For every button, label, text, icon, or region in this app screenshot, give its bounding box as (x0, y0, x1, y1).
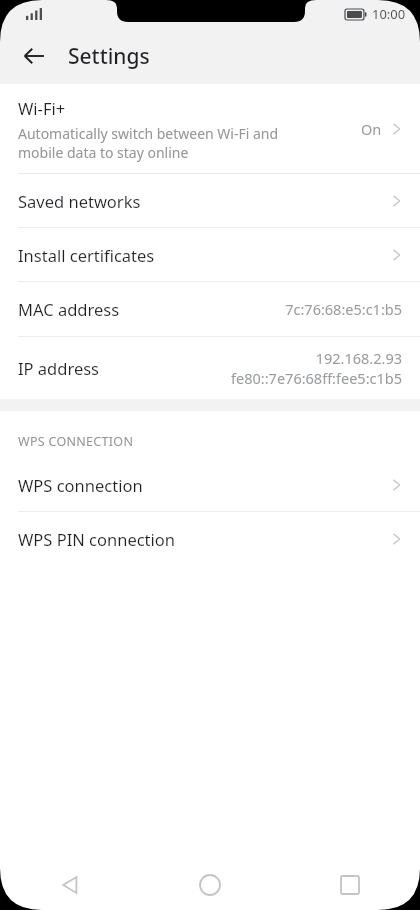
staticText: 192.168.2.93 (315, 348, 402, 368)
button[interactable]: Back (14, 36, 54, 76)
staticText: 7c:76:68:e5:c1:b5 (285, 299, 402, 319)
button[interactable]: IP address (0, 337, 420, 399)
staticText: WPS PIN connection (18, 528, 390, 550)
staticText: 10:00 (372, 5, 406, 23)
button[interactable]: Saved networks (0, 174, 420, 227)
staticText: Install certificates (18, 244, 390, 266)
staticText: IP address (18, 357, 231, 379)
staticText: Settings (68, 42, 150, 71)
button[interactable]: WPS PIN connection (0, 512, 420, 565)
staticText: fe80::7e76:68ff:fee5:c1b5 (231, 368, 402, 388)
button[interactable]: MAC address (0, 282, 420, 336)
staticText: WPS connection (18, 474, 390, 496)
button[interactable]: Install certificates (0, 228, 420, 281)
staticText: Automatically switch between Wi-Fi and m… (18, 124, 279, 162)
staticText: Saved networks (18, 190, 390, 212)
staticText: MAC address (18, 298, 285, 320)
button[interactable]: Home (140, 860, 280, 910)
staticText: On (361, 119, 382, 139)
staticText: Wi-Fi+ (18, 97, 66, 119)
button[interactable]: WPS connection (0, 458, 420, 511)
button[interactable]: Recents (280, 860, 420, 910)
button[interactable]: Back (0, 860, 140, 910)
button[interactable]: Wi-Fi+ (0, 84, 420, 173)
staticText: WPS CONNECTION (18, 433, 134, 450)
